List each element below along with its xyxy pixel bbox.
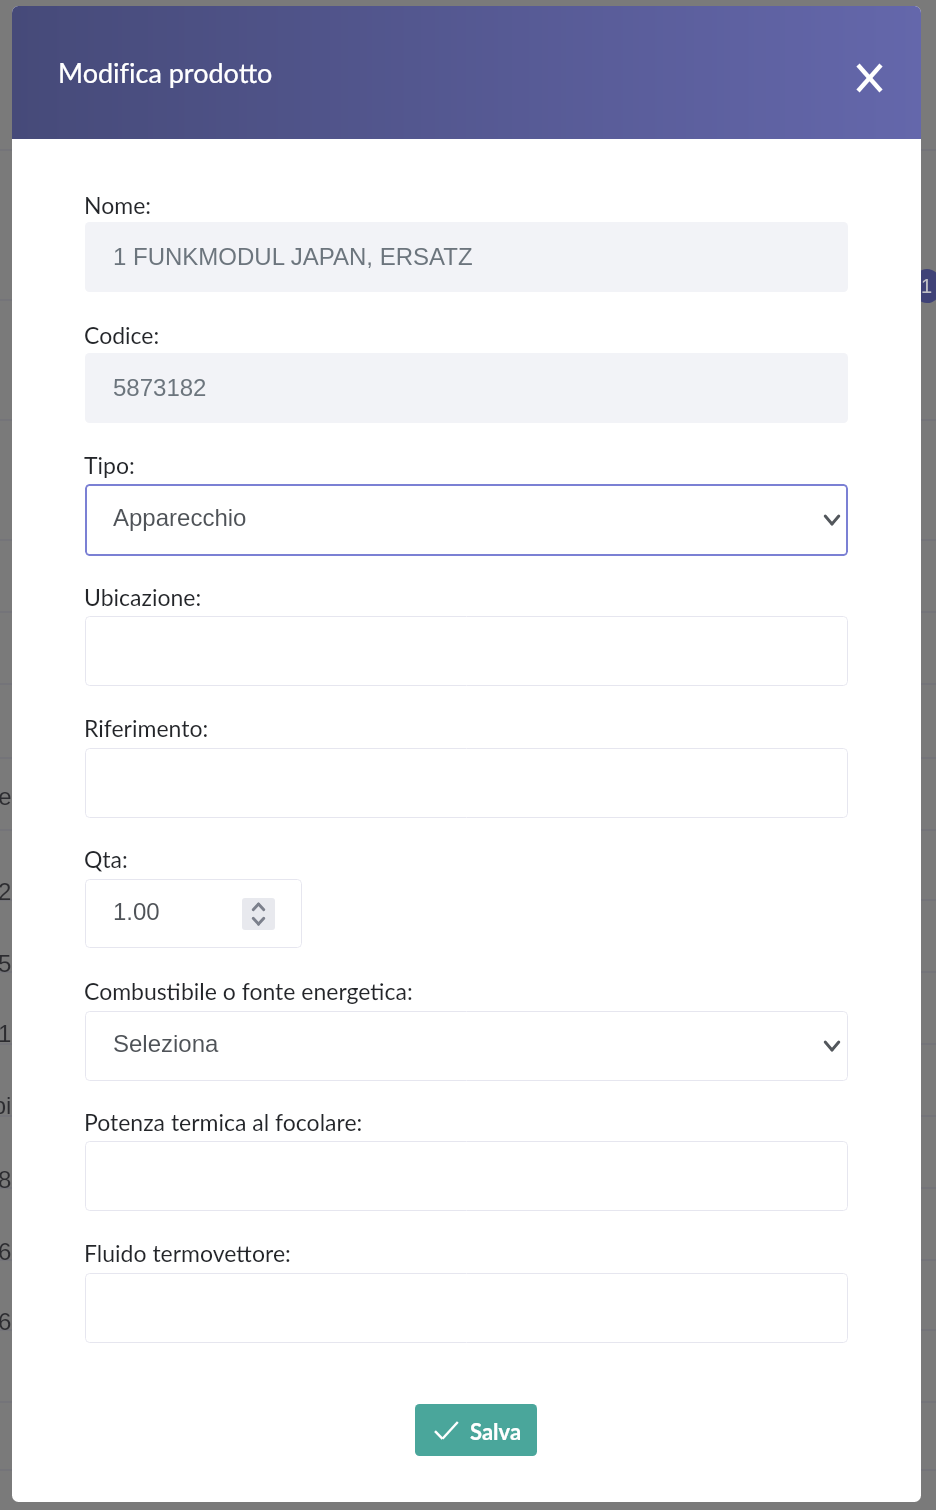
staticText: 8673531	[0, 1020, 12, 1047]
staticText: 1	[921, 275, 933, 297]
staticText: Qta:	[84, 845, 128, 873]
button[interactable]	[85, 616, 848, 686]
button[interactable]: Seleziona	[85, 1011, 848, 1081]
button[interactable]: Apparecchio	[85, 484, 848, 556]
button[interactable]: Increment or decrement quantity	[242, 898, 275, 930]
button[interactable]	[85, 1141, 848, 1211]
staticText: Codice:	[84, 321, 160, 349]
staticText: Salva	[470, 1418, 522, 1444]
staticText: Potenza termica al focolare:	[84, 1108, 363, 1136]
staticText: 5873182	[0, 878, 12, 905]
staticText: Codice	[0, 783, 12, 810]
staticText: Tipo:	[84, 451, 135, 479]
staticText: Nome:	[84, 191, 152, 219]
staticText: Riferimento:	[84, 714, 209, 742]
staticText: 6631276	[0, 1238, 12, 1265]
button[interactable]: 5873182	[85, 353, 848, 423]
staticText: Apparecchio	[113, 504, 247, 531]
button[interactable]: 1.00	[85, 879, 302, 948]
staticText: 4712345	[0, 950, 12, 977]
button[interactable]: Salva	[415, 1404, 537, 1456]
staticText: Ubicazione:	[84, 583, 202, 611]
staticText: ricambi	[0, 1092, 12, 1119]
button[interactable]: Close	[843, 52, 895, 104]
staticText: 1 FUNKMODUL JAPAN, ERSATZ	[113, 243, 473, 270]
staticText: 5562318	[0, 1166, 12, 1193]
staticText: 5873182	[113, 374, 207, 401]
staticText: Modif‌ica prodotto	[58, 56, 273, 88]
staticText: Fluido termovettore:	[84, 1239, 291, 1267]
button[interactable]	[85, 1273, 848, 1343]
staticText: Seleziona	[113, 1030, 219, 1057]
button[interactable]	[85, 748, 848, 818]
staticText: 2284436	[0, 1308, 12, 1335]
staticText: 1.00	[113, 898, 160, 925]
button[interactable]: 1 FUNKMODUL JAPAN, ERSATZ	[85, 222, 848, 292]
staticText: Combustibile o fonte energetica:	[84, 977, 413, 1005]
